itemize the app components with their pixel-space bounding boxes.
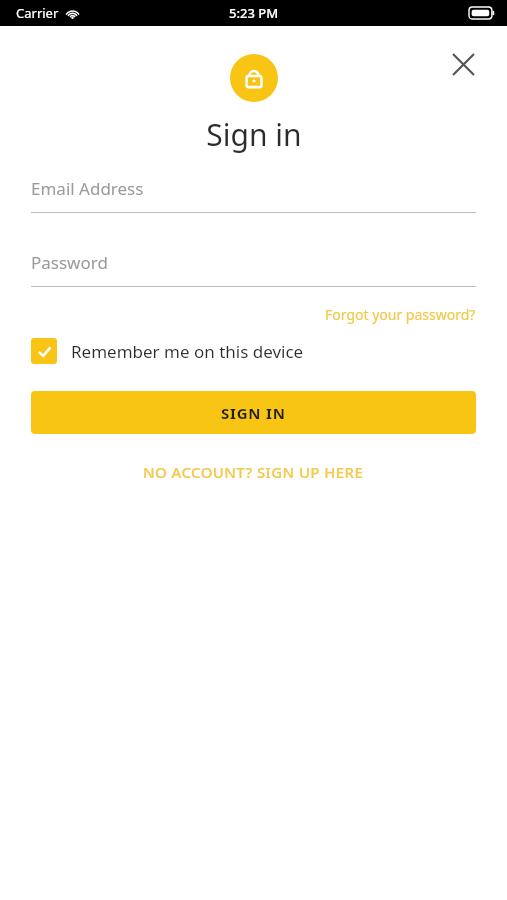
button[interactable]: Email Address (31, 177, 476, 213)
button[interactable]: Close (441, 42, 485, 86)
staticText: Password (31, 251, 108, 274)
button[interactable]: Remember me on this device (31, 338, 476, 364)
staticText: Email Address (31, 177, 144, 200)
button[interactable]: SIGN IN (31, 391, 476, 434)
staticText: Remember me on this device (71, 340, 304, 363)
staticText: Carrier (16, 4, 59, 22)
staticText: Sign in (206, 114, 302, 155)
staticText: 5:23 PM (229, 4, 279, 22)
staticText: NO ACCOUNT? SIGN UP HERE (143, 462, 364, 482)
button[interactable]: Forgot your password? (325, 303, 476, 326)
button[interactable]: NO ACCOUNT? SIGN UP HERE (135, 458, 372, 486)
button[interactable]: Password (31, 251, 476, 287)
staticText: Forgot your password? (325, 305, 476, 324)
staticText: SIGN IN (221, 403, 286, 423)
